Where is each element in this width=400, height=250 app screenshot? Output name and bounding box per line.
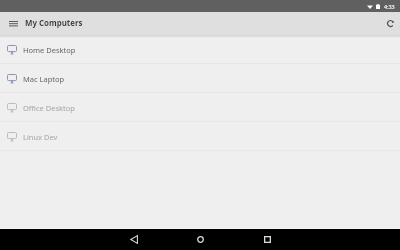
button[interactable]: Back bbox=[100, 229, 167, 250]
staticText: Office Desktop bbox=[23, 103, 75, 113]
button[interactable]: Home Desktop bbox=[0, 35, 400, 64]
staticText: My Computers bbox=[25, 18, 83, 29]
button[interactable]: Linux Dev bbox=[0, 122, 400, 151]
button[interactable]: Recent apps bbox=[234, 229, 301, 250]
button[interactable]: Home bbox=[167, 229, 234, 250]
button[interactable]: Office Desktop bbox=[0, 93, 400, 122]
staticText: Mac Laptop bbox=[23, 74, 65, 84]
staticText: 4:33 bbox=[384, 3, 395, 10]
staticText: Home Desktop bbox=[23, 45, 76, 55]
button[interactable]: Refresh bbox=[383, 16, 397, 30]
staticText: Linux Dev bbox=[23, 132, 58, 142]
button[interactable]: Open navigation menu bbox=[6, 17, 20, 31]
button[interactable]: Mac Laptop bbox=[0, 64, 400, 93]
